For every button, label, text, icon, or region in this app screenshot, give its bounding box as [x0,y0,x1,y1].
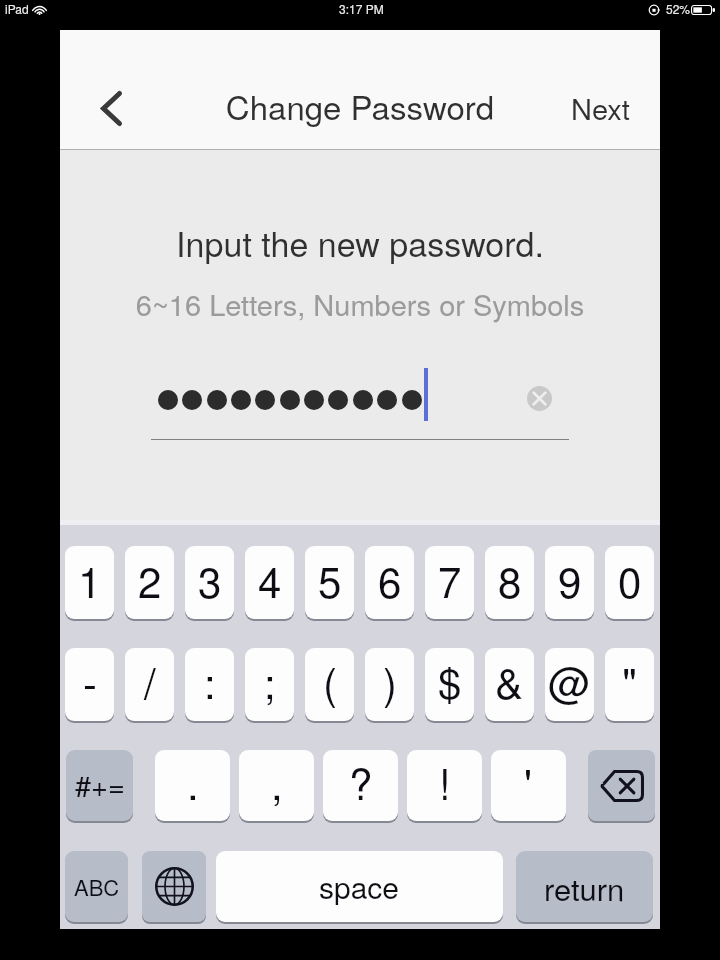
button[interactable]: 2 [125,546,174,619]
button[interactable]: 0 [605,546,654,619]
staticText: 3:17 PM [339,0,384,17]
staticText: ) [383,651,397,711]
staticText: - [83,651,97,711]
staticText: Next [571,87,630,129]
button[interactable]: #+= [66,750,133,821]
staticText: Input the new password. [60,218,660,267]
staticText: ( [323,651,337,711]
button[interactable]: / [125,648,174,721]
button[interactable]: return [516,851,653,922]
button[interactable]: ' [491,750,566,821]
button[interactable]: Change keyboard language [142,851,206,922]
button[interactable]: ( [305,648,354,721]
button[interactable]: " [605,648,654,721]
button[interactable]: ABC [65,851,128,922]
button[interactable]: 5 [305,546,354,619]
button[interactable]: @ [545,648,594,721]
staticText: 8 [498,550,522,610]
staticText: ! [439,752,451,812]
staticText: / [144,651,156,711]
button[interactable]: . [155,750,230,821]
button[interactable]: Next [554,87,634,133]
staticText: 3 [198,550,222,610]
staticText: ; [264,651,276,711]
staticText: 2 [138,550,162,610]
button[interactable]: & [485,648,534,721]
staticText: : [204,651,216,711]
button[interactable]: ! [407,750,482,821]
button[interactable]: 9 [545,546,594,619]
staticText: return [544,865,625,909]
staticText: Change Password [60,82,660,129]
staticText: , [271,752,283,812]
staticText: ' [524,752,533,812]
staticText: 0 [618,550,642,610]
staticText: @ [548,651,591,711]
staticText: 1 [78,550,102,610]
staticText: 5 [318,550,342,610]
button[interactable]: 4 [245,546,294,619]
button[interactable]: 1 [65,546,114,619]
staticText: 7 [438,550,462,610]
staticText: #+= [75,764,125,806]
button[interactable]: 8 [485,546,534,619]
button[interactable]: ) [365,648,414,721]
staticText: 52% [666,0,691,17]
button[interactable]: Back [84,80,146,142]
staticText: iPad [5,0,29,17]
button[interactable]: ? [323,750,398,821]
staticText: 6 [378,550,402,610]
button[interactable]: 7 [425,546,474,619]
button[interactable]: ; [245,648,294,721]
staticText: $ [438,651,462,711]
button[interactable]: 6 [365,546,414,619]
staticText: 4 [258,550,282,610]
staticText: 6~16 Letters, Numbers or Symbols [60,283,660,325]
staticText: . [187,752,199,812]
staticText: & [495,651,524,711]
button[interactable]: space [216,851,503,922]
button[interactable]: : [185,648,234,721]
staticText: " [622,651,637,711]
button[interactable]: - [65,648,114,721]
staticText: space [319,865,400,908]
button[interactable]: Clear text [519,378,560,419]
staticText: ? [349,752,373,812]
button[interactable]: , [239,750,314,821]
staticText: ABC [74,871,120,903]
button[interactable]: $ [425,648,474,721]
button[interactable]: 3 [185,546,234,619]
staticText: 9 [558,550,582,610]
button[interactable]: Backspace [588,750,655,821]
